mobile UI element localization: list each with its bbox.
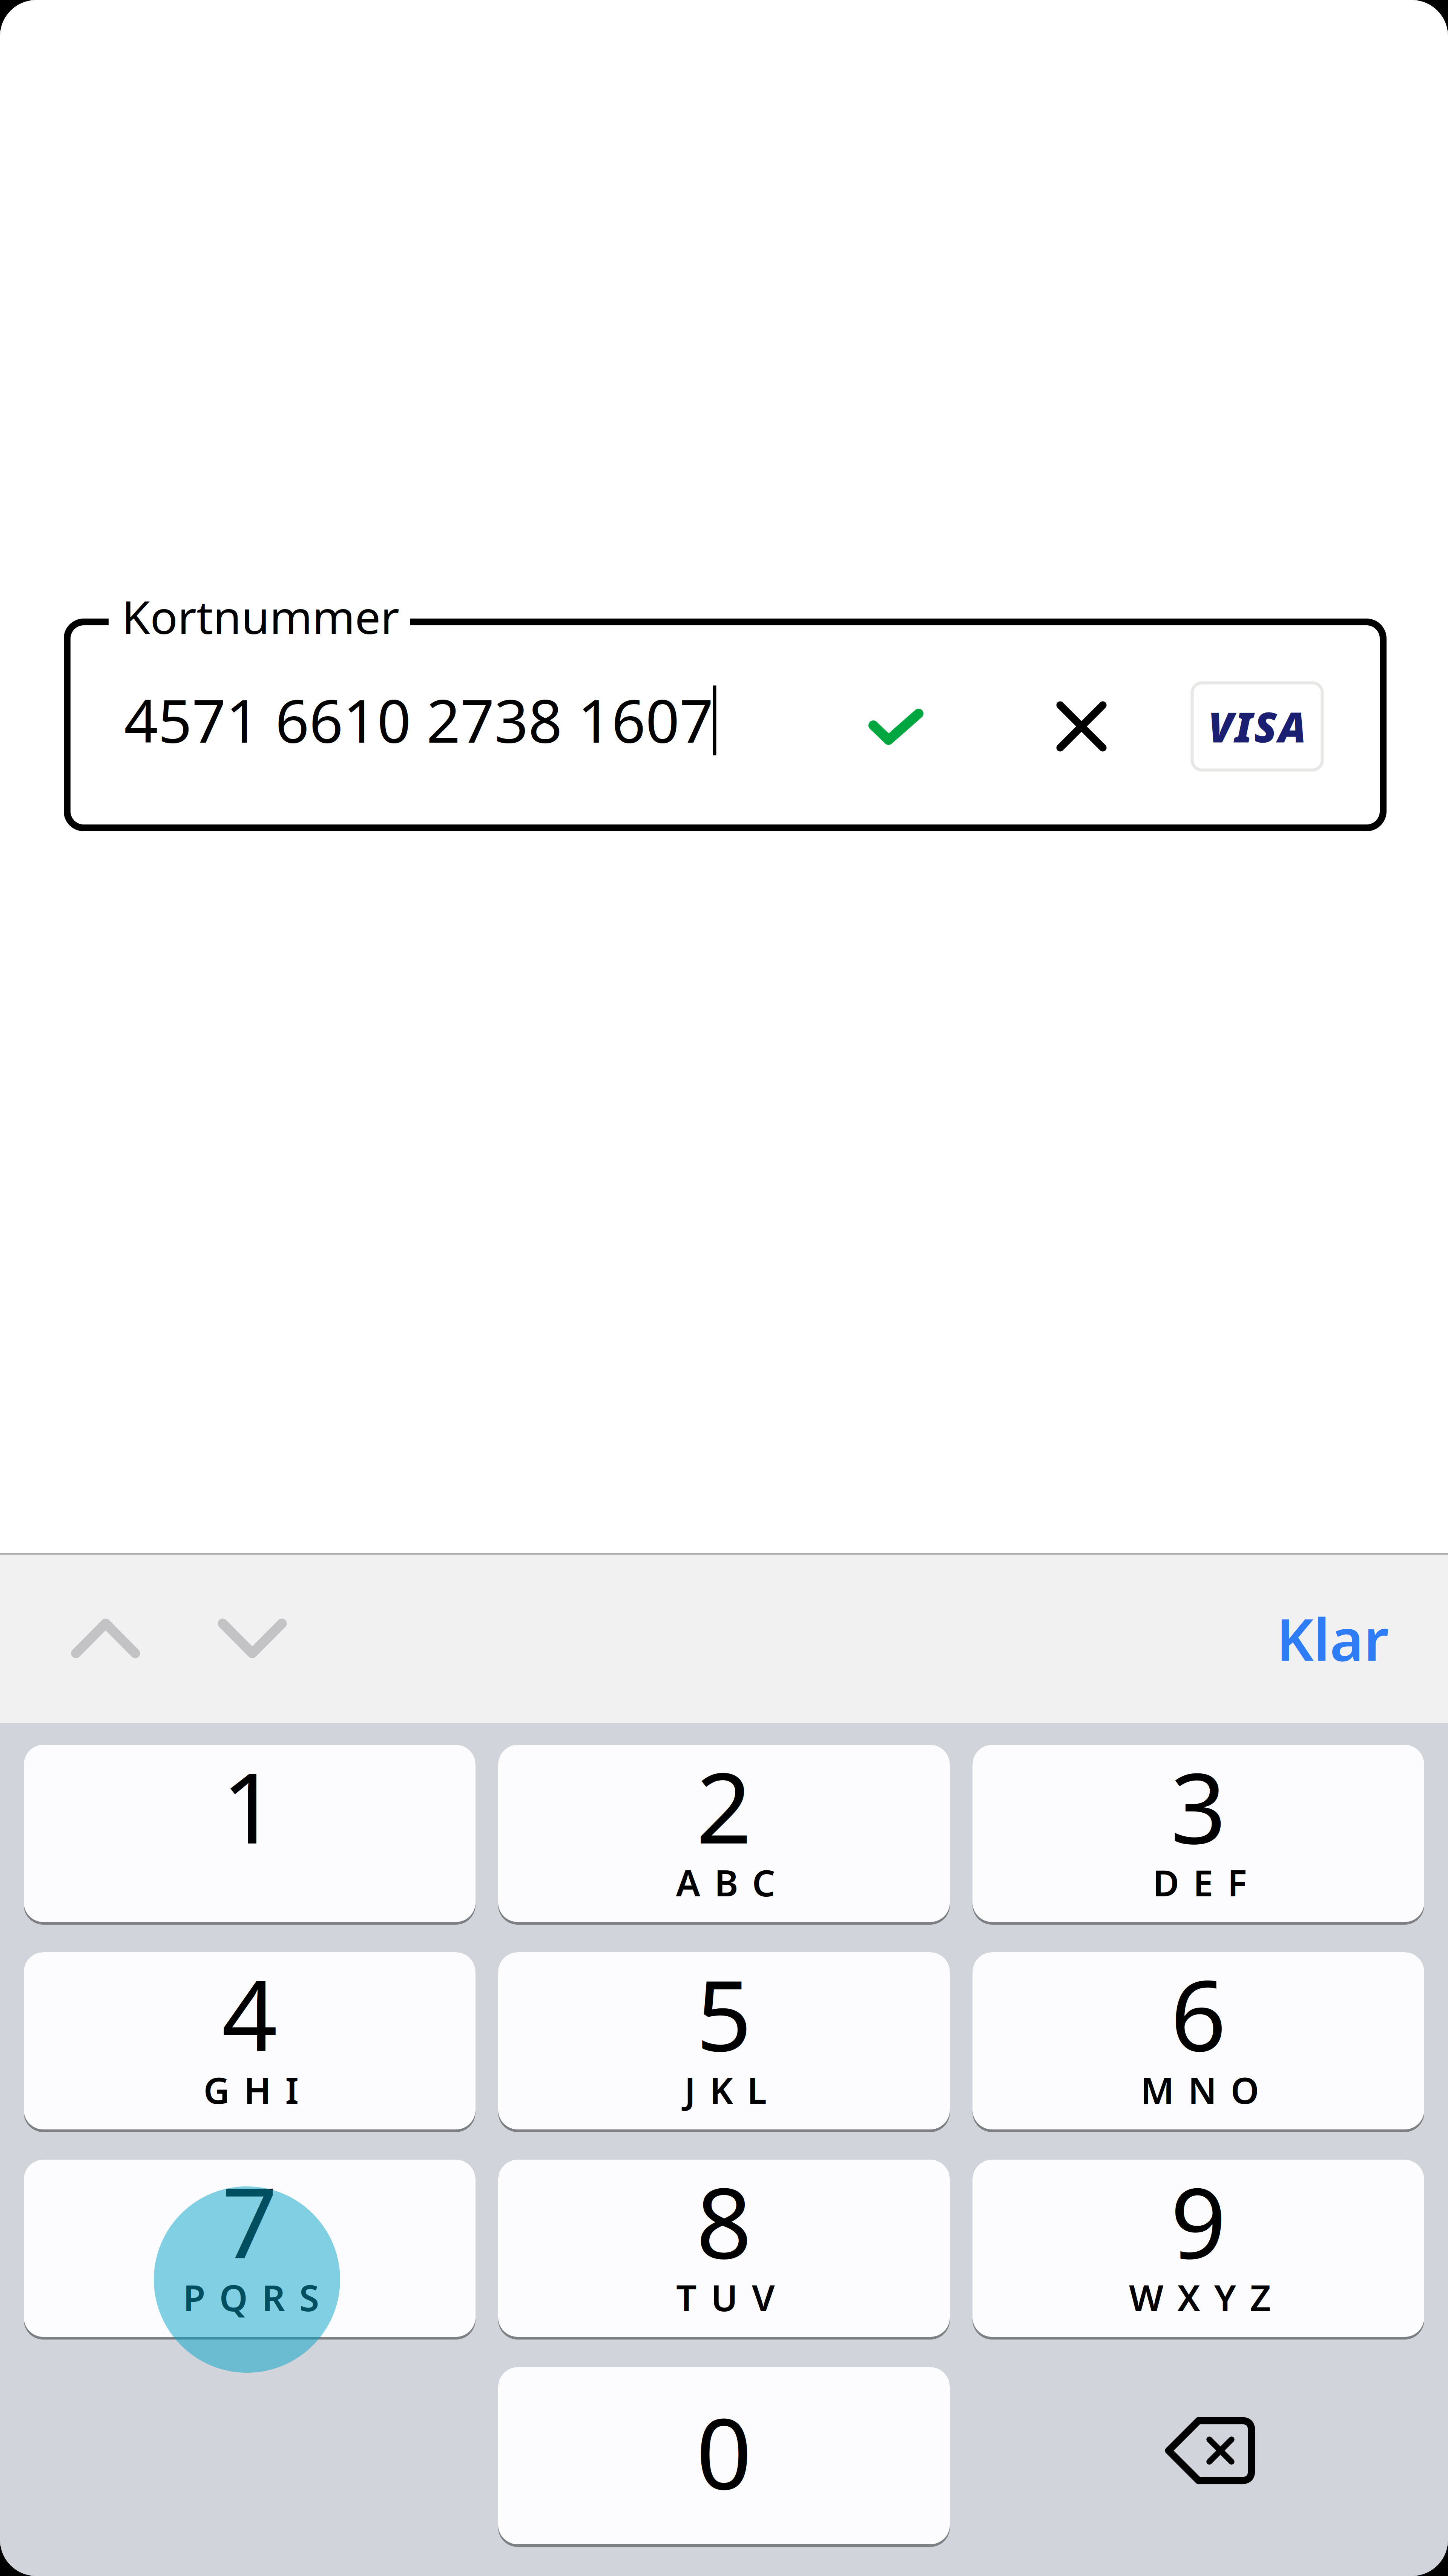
staticText: 1 — [222, 1741, 278, 1870]
staticText: 2 — [696, 1741, 752, 1870]
button[interactable]: 5 — [498, 1952, 950, 2132]
button[interactable]: Next field — [188, 1574, 316, 1702]
button[interactable]: Previous field — [41, 1574, 170, 1702]
staticText: PQRS — [183, 2273, 319, 2321]
staticText: 7 — [222, 2156, 278, 2285]
button[interactable]: 2 — [498, 1745, 950, 1925]
staticText: ABC — [676, 1858, 775, 1906]
button[interactable]: 8 — [498, 2160, 950, 2340]
staticText: 4 — [222, 1948, 278, 2078]
staticText: JKL — [684, 2066, 767, 2114]
staticText: 8 — [696, 2156, 752, 2285]
button[interactable]: 9 — [972, 2160, 1424, 2340]
button[interactable]: 4 — [24, 1952, 476, 2132]
staticText: 4571 6610 2738 1607 — [124, 680, 713, 759]
button[interactable]: Kortnummer — [64, 593, 1387, 857]
button[interactable]: 1 — [24, 1745, 476, 1925]
button[interactable]: 7 — [24, 2160, 476, 2340]
staticText: 6 — [1170, 1948, 1226, 2078]
staticText: 0 — [696, 2386, 752, 2516]
staticText: Kortnummer — [122, 586, 399, 647]
staticText: 5 — [696, 1948, 752, 2078]
button[interactable]: 0 — [498, 2367, 950, 2547]
staticText: WXYZ — [1129, 2273, 1271, 2321]
staticText: 9 — [1170, 2156, 1226, 2285]
staticText: Klar — [1276, 1600, 1389, 1677]
button[interactable]: Klar — [1252, 1574, 1414, 1702]
button[interactable]: Delete — [984, 2362, 1436, 2539]
button[interactable]: 6 — [972, 1952, 1424, 2132]
staticText: TUV — [676, 2273, 775, 2321]
staticText: VISA — [1208, 699, 1306, 754]
staticText: 3 — [1170, 1741, 1226, 1870]
button[interactable]: 3 — [972, 1745, 1424, 1925]
staticText: DEF — [1153, 1858, 1247, 1906]
button[interactable]: Clear — [1040, 685, 1123, 768]
staticText: GHI — [203, 2066, 299, 2114]
staticText: MNO — [1140, 2066, 1259, 2114]
